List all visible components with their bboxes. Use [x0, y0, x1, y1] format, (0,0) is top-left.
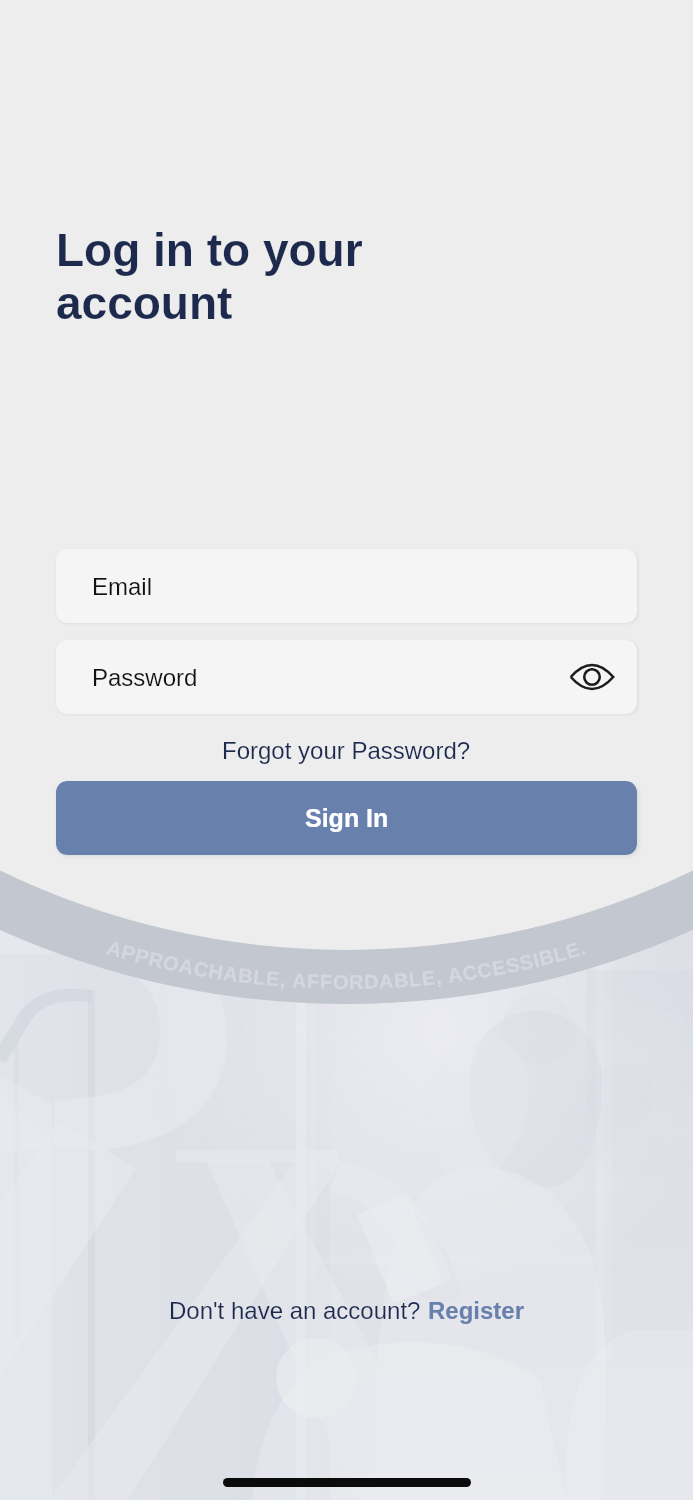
button[interactable]: Forgot your Password?	[210, 731, 483, 770]
button[interactable]: Email	[56, 549, 637, 623]
staticText: Email	[92, 573, 153, 600]
button[interactable]: Password	[56, 640, 637, 714]
staticText: Password	[92, 664, 198, 691]
button[interactable]: Sign In	[56, 781, 637, 855]
staticText: Log in to your account	[56, 224, 363, 329]
staticText: Don't have an account?	[169, 1297, 428, 1324]
staticText: Sign In	[305, 804, 389, 832]
button[interactable]: Don't have an account?	[169, 1293, 525, 1328]
staticText: Register	[428, 1297, 525, 1324]
button[interactable]: Show password	[567, 652, 617, 702]
